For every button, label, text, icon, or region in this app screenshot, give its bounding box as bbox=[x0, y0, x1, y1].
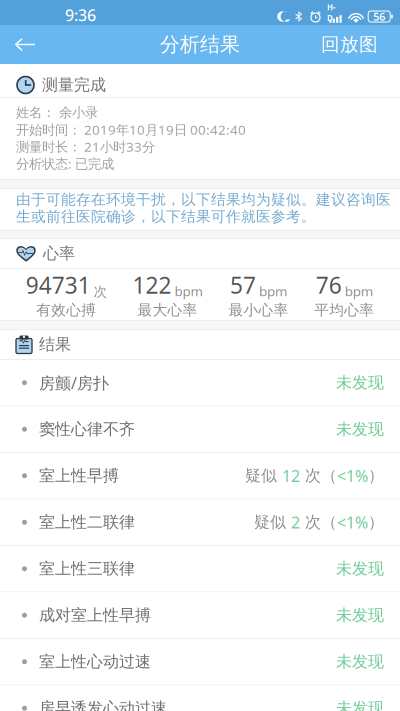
staticText: 成对室上性早搏 bbox=[39, 605, 151, 625]
staticText: 分析状态: 已完成 bbox=[16, 155, 114, 172]
button[interactable]: 房早诱发心动过速 bbox=[0, 685, 400, 711]
staticText: bpm bbox=[345, 282, 373, 300]
staticText: 回放图 bbox=[321, 33, 378, 56]
staticText: ） bbox=[368, 512, 384, 532]
button[interactable]: 成对室上性早搏 bbox=[0, 592, 400, 639]
staticText: 房颤/房扑 bbox=[39, 372, 109, 393]
staticText: 生或前往医院确诊，以下结果可作就医参考。 bbox=[16, 207, 316, 225]
staticText: 94731 bbox=[26, 270, 91, 300]
button[interactable]: 室上性二联律 bbox=[0, 499, 400, 546]
staticText: 测量时长： 21小时33分 bbox=[16, 138, 155, 155]
staticText: 2 bbox=[291, 512, 300, 533]
staticText: 平均心率 bbox=[314, 301, 374, 319]
staticText: 次 bbox=[94, 284, 107, 300]
staticText: ） bbox=[368, 466, 384, 486]
staticText: 测量完成 bbox=[42, 75, 106, 95]
staticText: 分析结果 bbox=[160, 32, 240, 57]
staticText: bpm bbox=[259, 282, 287, 300]
button[interactable]: 回放图 bbox=[299, 25, 400, 64]
button[interactable]: 返回 bbox=[0, 25, 50, 64]
staticText: 76 bbox=[316, 270, 342, 300]
button[interactable]: 室上性三联律 bbox=[0, 546, 400, 592]
staticText: 未发现 bbox=[336, 559, 384, 579]
staticText: 开始时间： 2019年10月19日 00:42:40 bbox=[16, 121, 246, 138]
staticText: 9:36 bbox=[65, 4, 96, 26]
staticText: 未发现 bbox=[336, 698, 384, 711]
staticText: 结果 bbox=[39, 335, 71, 354]
button[interactable]: 窦性心律不齐 bbox=[0, 406, 400, 453]
staticText: bpm bbox=[175, 282, 203, 300]
staticText: 室上性心动过速 bbox=[39, 652, 151, 672]
staticText: 次（ bbox=[300, 512, 337, 532]
staticText: <1% bbox=[337, 465, 368, 486]
staticText: 57 bbox=[230, 270, 256, 300]
staticText: 次（ bbox=[300, 466, 337, 486]
staticText: 由于可能存在环境干扰，以下结果均为疑似。建议咨询医 bbox=[16, 190, 391, 208]
staticText: 室上性早搏 bbox=[39, 466, 119, 486]
staticText: 室上性二联律 bbox=[39, 512, 135, 532]
staticText: 最小心率 bbox=[228, 301, 288, 319]
staticText: 室上性三联律 bbox=[39, 559, 135, 579]
staticText: 未发现 bbox=[336, 419, 384, 439]
staticText: 12 bbox=[282, 465, 300, 486]
staticText: 未发现 bbox=[336, 605, 384, 625]
staticText: 122 bbox=[133, 270, 172, 300]
staticText: <1% bbox=[337, 512, 368, 533]
staticText: HD bbox=[327, 2, 336, 23]
staticText: 未发现 bbox=[336, 373, 384, 393]
staticText: 未发现 bbox=[336, 652, 384, 672]
button[interactable]: 室上性早搏 bbox=[0, 453, 400, 499]
staticText: 56 bbox=[373, 9, 385, 24]
staticText: 最大心率 bbox=[138, 301, 198, 319]
staticText: 姓名： 余小录 bbox=[16, 104, 98, 121]
button[interactable]: 房颤/房扑 bbox=[0, 360, 400, 406]
staticText: 疑似 bbox=[254, 512, 291, 532]
staticText: 窦性心律不齐 bbox=[39, 419, 135, 439]
button[interactable]: 室上性心动过速 bbox=[0, 639, 400, 685]
staticText: 房早诱发心动过速 bbox=[39, 698, 167, 711]
staticText: 心率 bbox=[43, 244, 75, 263]
staticText: 有效心搏 bbox=[36, 301, 96, 319]
staticText: 疑似 bbox=[245, 466, 282, 486]
